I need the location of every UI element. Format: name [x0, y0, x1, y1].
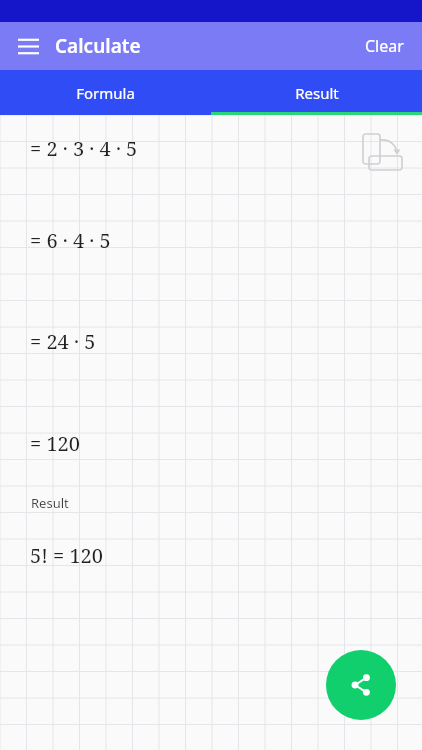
staticText: Result: [295, 83, 339, 103]
staticText: Formula: [76, 83, 135, 103]
staticText: Result: [31, 494, 69, 512]
button[interactable]: Open navigation menu: [9, 27, 47, 65]
staticText: Clear: [365, 35, 404, 57]
staticText: = 6 · 4 · 5: [30, 227, 111, 254]
staticText: = 24 · 5: [30, 328, 96, 355]
staticText: 5! = 120: [30, 542, 103, 569]
button[interactable]: Rotate screen: [356, 129, 406, 179]
button[interactable]: Formula: [0, 70, 211, 115]
staticText: = 120: [30, 430, 80, 457]
button[interactable]: Result: [211, 70, 422, 115]
button[interactable]: Clear: [355, 27, 414, 65]
button[interactable]: Share: [326, 650, 396, 720]
staticText: Calculate: [55, 33, 141, 59]
staticText: = 2 · 3 · 4 · 5: [30, 135, 138, 162]
